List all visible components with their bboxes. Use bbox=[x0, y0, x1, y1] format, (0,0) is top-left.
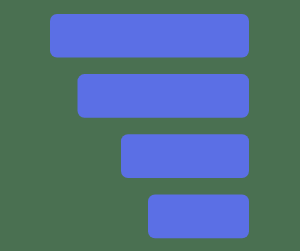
button[interactable]: Bar 2, value 172 bbox=[78, 74, 250, 118]
button[interactable]: Bar 3, value 128 bbox=[121, 134, 249, 178]
button[interactable]: Bar 4, value 101 bbox=[148, 195, 249, 239]
button[interactable]: Bar 1, value 199 bbox=[50, 14, 249, 58]
